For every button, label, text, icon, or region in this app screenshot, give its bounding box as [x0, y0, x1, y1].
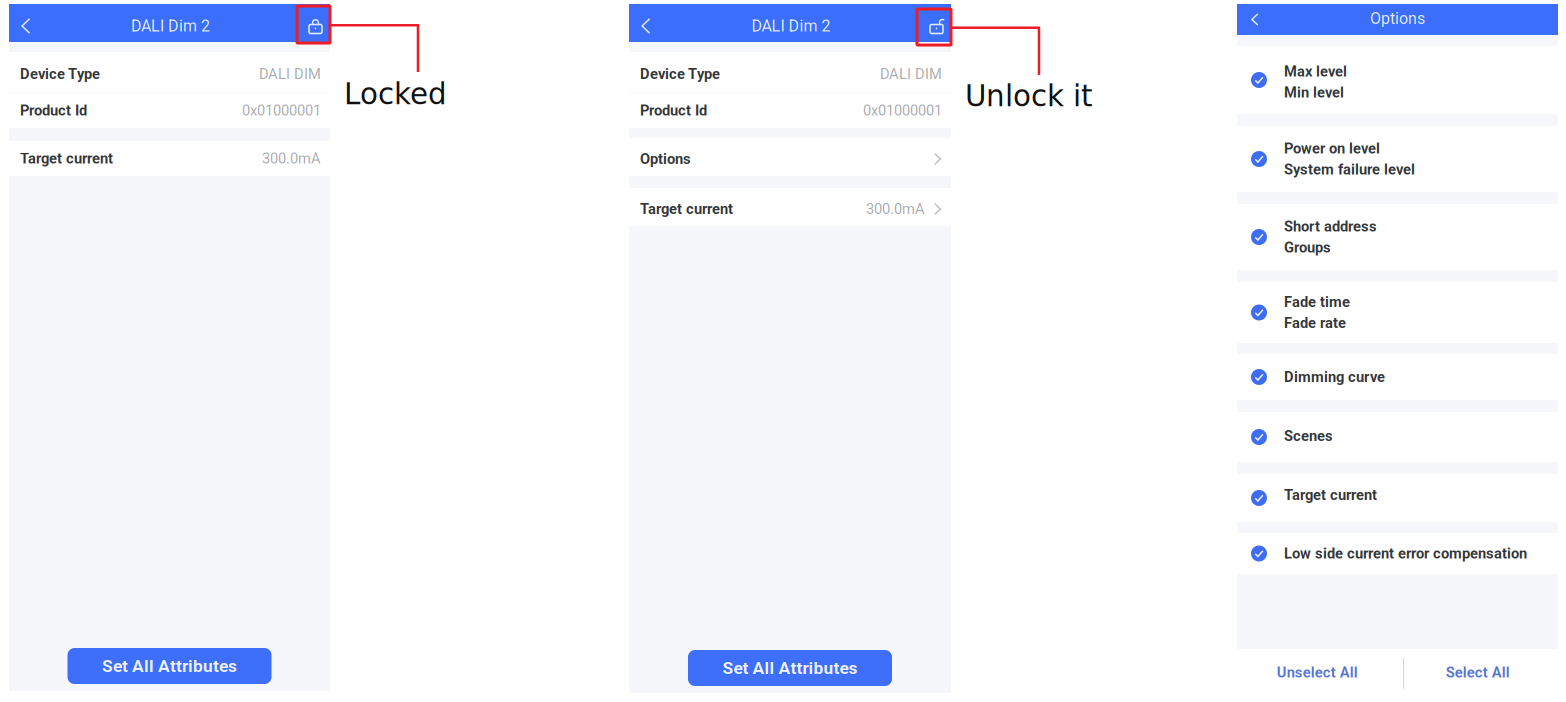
staticText: Target current [1284, 486, 1377, 504]
button[interactable]: Back [1237, 4, 1273, 35]
staticText: Short address [1284, 218, 1377, 235]
staticText: Product Id [640, 102, 707, 119]
button[interactable]: Set All Attributes [67, 648, 271, 684]
staticText: Fade rate [1284, 314, 1346, 332]
staticText: Set All Attributes [722, 658, 857, 678]
button[interactable]: Device Type [9, 52, 330, 92]
staticText: DALI Dim 2 [751, 17, 830, 35]
button[interactable]: Unlock device [917, 13, 947, 39]
staticText: Select All [1446, 664, 1510, 681]
staticText: System failure level [1284, 161, 1415, 178]
button[interactable]: Unselect All [1237, 649, 1397, 702]
button[interactable]: Low side current error compensation [1237, 533, 1558, 574]
staticText: Product Id [20, 102, 87, 119]
button[interactable]: Dimming curve [1237, 354, 1558, 400]
staticText: Dimming curve [1284, 368, 1385, 386]
staticText: DALI Dim 2 [131, 17, 210, 35]
staticText: Locked [344, 77, 447, 111]
button[interactable]: Target current [1237, 474, 1558, 522]
staticText: DALI DIM [880, 65, 942, 83]
button[interactable]: Back [11, 13, 41, 39]
button[interactable]: Select All [1397, 649, 1558, 702]
staticText: Options [640, 150, 691, 168]
staticText: Max level [1284, 63, 1347, 80]
staticText: 300.0mA [866, 200, 925, 218]
button[interactable]: Device Type [629, 52, 951, 92]
staticText: Unselect All [1277, 664, 1358, 681]
staticText: Device Type [640, 65, 720, 83]
button[interactable]: Fade time [1237, 282, 1558, 343]
staticText: Set All Attributes [102, 656, 237, 676]
button[interactable]: Target current [9, 141, 330, 176]
button[interactable]: Set All Attributes [688, 650, 892, 686]
staticText: Fade time [1284, 293, 1350, 310]
staticText: Groups [1284, 239, 1331, 256]
button[interactable]: Max level [1237, 46, 1558, 114]
staticText: Power on level [1284, 140, 1380, 157]
staticText: DALI DIM [259, 65, 321, 83]
staticText: 300.0mA [262, 150, 321, 167]
staticText: 0x01000001 [863, 102, 942, 119]
button[interactable]: Product Id [629, 93, 951, 128]
staticText: Min level [1284, 84, 1344, 101]
button[interactable]: Options [629, 138, 951, 176]
staticText: Options [1370, 9, 1425, 28]
button[interactable]: Scenes [1237, 412, 1558, 462]
button[interactable]: Back [631, 13, 661, 39]
staticText: Low side current error compensation [1284, 545, 1527, 562]
button[interactable]: Product Id [9, 93, 330, 128]
staticText: Scenes [1284, 427, 1333, 445]
button[interactable]: Power on level [1237, 126, 1558, 192]
staticText: Target current [20, 150, 113, 167]
button[interactable]: Short address [1237, 204, 1558, 270]
button[interactable]: Target current [629, 188, 951, 226]
staticText: Device Type [20, 65, 100, 83]
staticText: Unlock it [965, 79, 1093, 113]
button[interactable]: Device locked [296, 13, 326, 39]
staticText: 0x01000001 [242, 102, 321, 119]
staticText: Target current [640, 200, 733, 218]
